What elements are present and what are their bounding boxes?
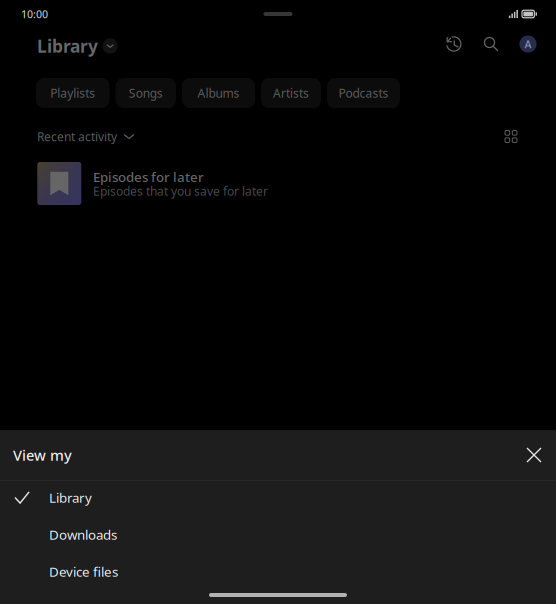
staticText: Podcasts: [338, 85, 388, 101]
staticText: Songs: [129, 85, 163, 101]
staticText: Albums: [198, 85, 240, 101]
button[interactable]: Library: [37, 34, 118, 57]
button[interactable]: Episodes for later: [0, 151, 556, 216]
staticText: Playlists: [50, 85, 95, 101]
staticText: A: [524, 37, 531, 51]
button[interactable]: Downloads: [0, 518, 556, 555]
staticText: Recent activity: [37, 128, 117, 144]
button[interactable]: Recent activity: [37, 122, 134, 151]
staticText: View my: [13, 445, 72, 465]
staticText: Downloads: [49, 526, 117, 543]
button[interactable]: Account: [513, 29, 543, 59]
staticText: Artists: [273, 85, 309, 101]
staticText: Library: [37, 34, 98, 57]
button[interactable]: Listening history: [439, 29, 469, 59]
button[interactable]: Search: [476, 29, 506, 59]
button[interactable]: Albums: [182, 78, 255, 108]
button[interactable]: Library: [0, 481, 556, 518]
staticText: Device files: [49, 563, 118, 580]
button[interactable]: Close: [527, 448, 541, 462]
button[interactable]: Playlists: [36, 78, 110, 108]
button[interactable]: Device files: [0, 555, 556, 592]
button[interactable]: Artists: [261, 78, 321, 108]
button[interactable]: Podcasts: [327, 78, 400, 108]
staticText: Episodes that you save for later: [93, 183, 268, 199]
staticText: 10:00: [21, 7, 48, 21]
button[interactable]: Change layout: [500, 122, 522, 151]
staticText: Episodes for later: [93, 168, 204, 186]
button[interactable]: Songs: [116, 78, 176, 108]
staticText: Library: [49, 489, 92, 506]
